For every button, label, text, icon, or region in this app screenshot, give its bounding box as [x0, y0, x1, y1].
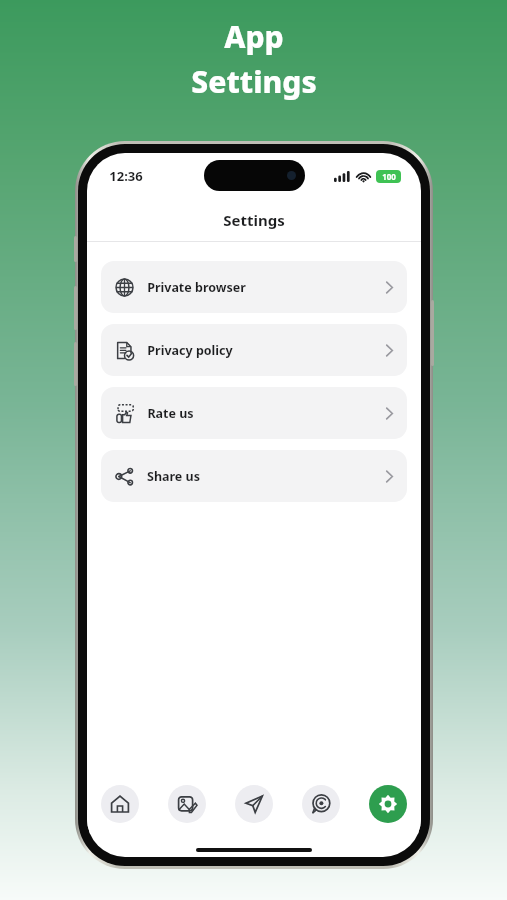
staticText: 12:36 [109, 167, 143, 185]
staticText: Share us [147, 468, 200, 485]
button[interactable]: Rate us [101, 387, 407, 439]
staticText: Private browser [147, 279, 246, 296]
staticText: Settings [191, 61, 317, 102]
staticText: Rate us [147, 405, 194, 422]
button[interactable]: Home [101, 785, 139, 823]
button[interactable]: Settings [369, 785, 407, 823]
button[interactable]: Edit photo [168, 785, 206, 823]
button[interactable]: Assistant [302, 785, 340, 823]
button[interactable]: Send [235, 785, 273, 823]
staticText: Settings [223, 210, 285, 230]
button[interactable]: Privacy policy [101, 324, 407, 376]
button[interactable]: Private browser [101, 261, 407, 313]
staticText: App [224, 16, 284, 57]
button[interactable]: Share us [101, 450, 407, 502]
staticText: Privacy policy [147, 342, 233, 359]
staticText: 100 [382, 171, 396, 182]
